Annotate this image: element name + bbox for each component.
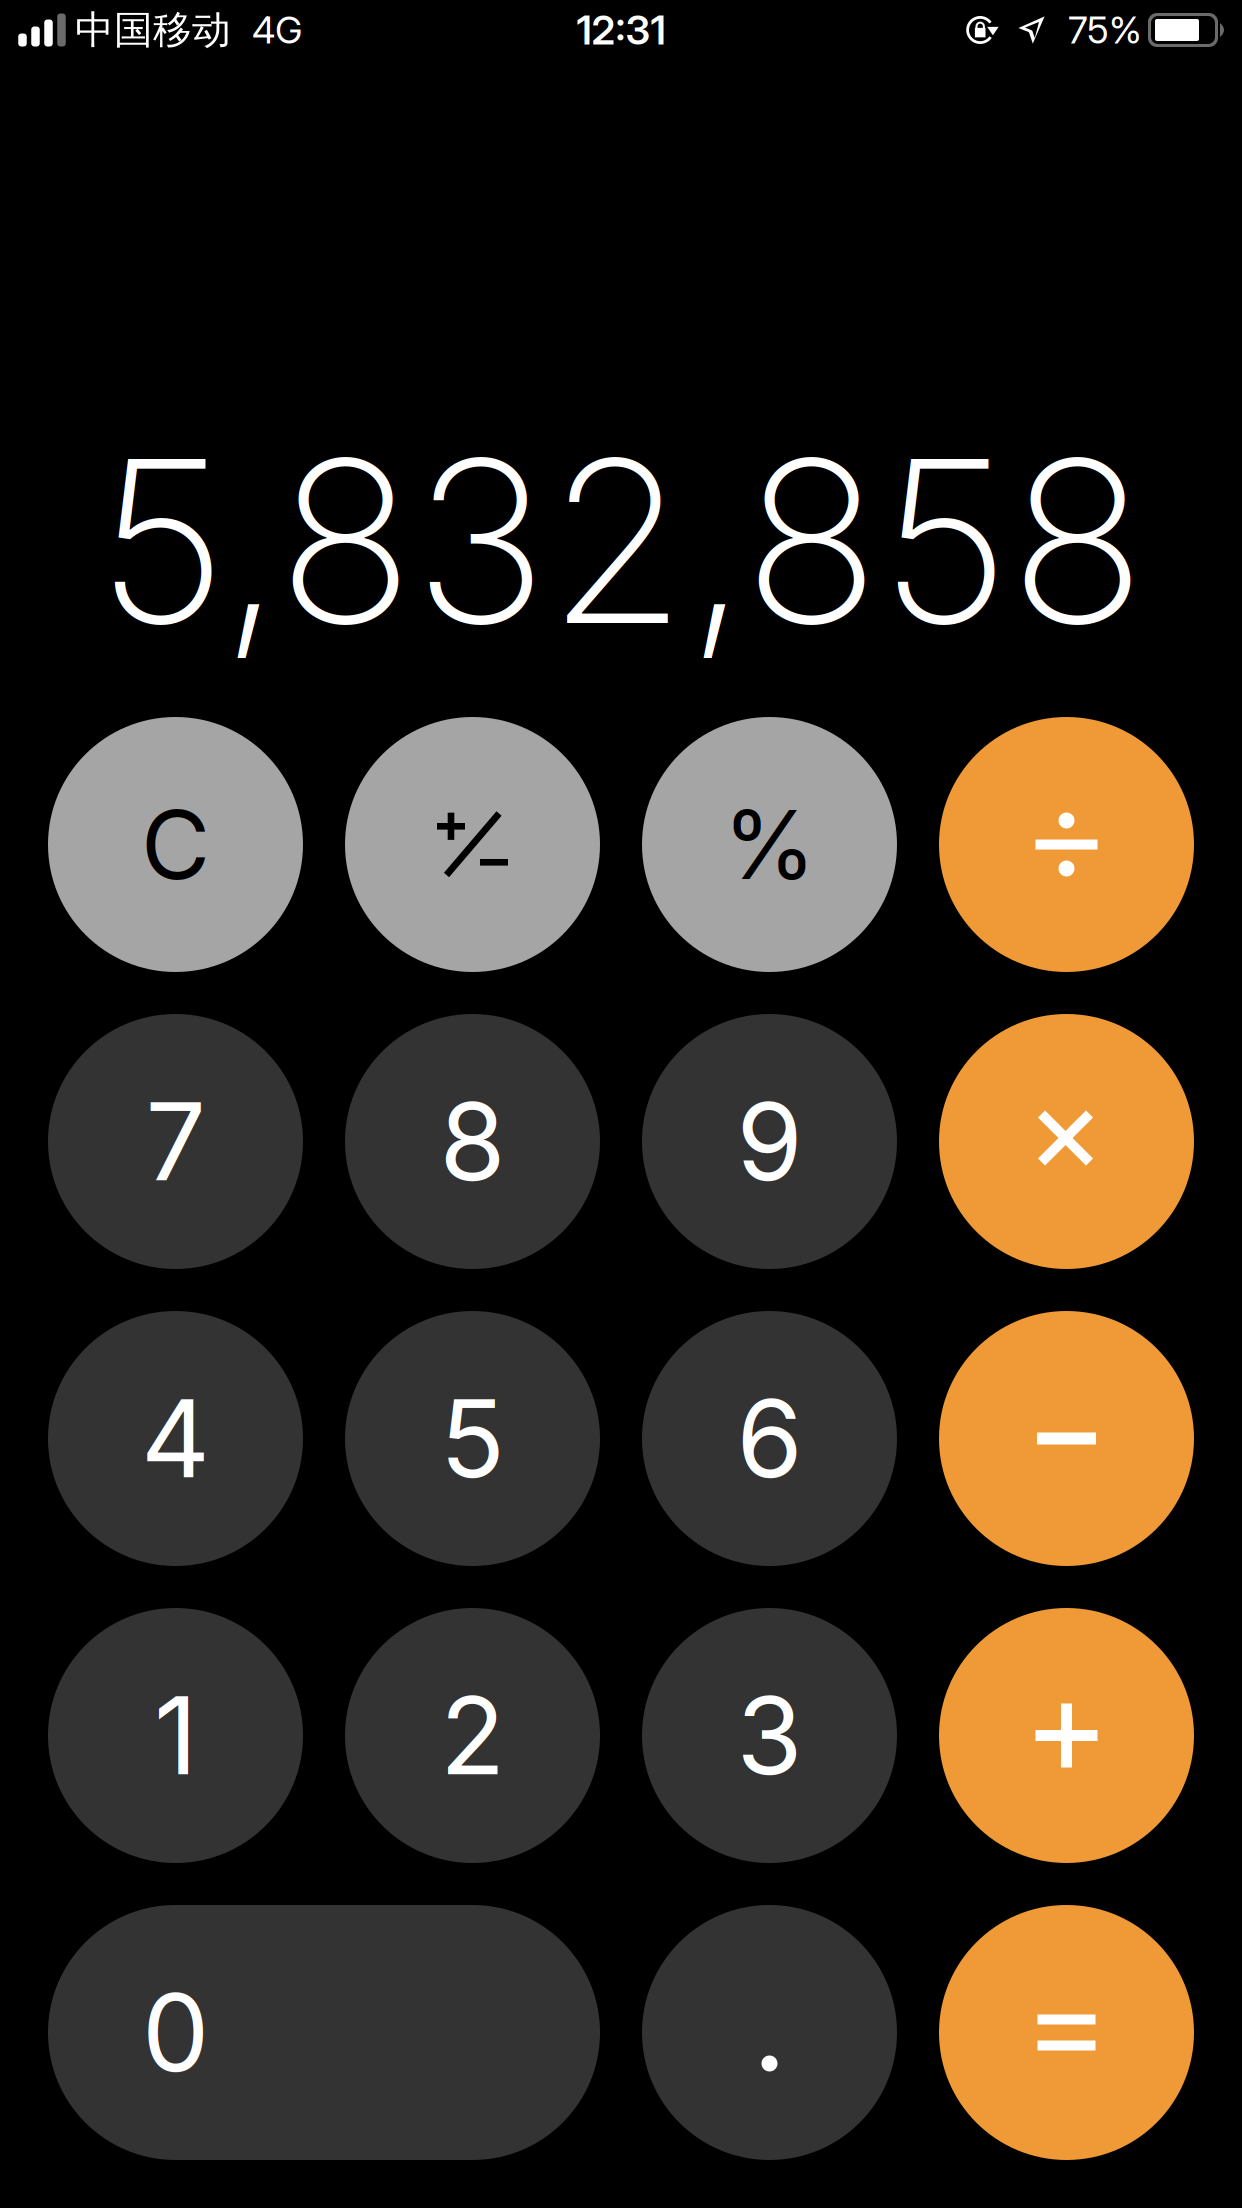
button[interactable]: Multiply [939,1014,1194,1269]
staticText: 4G [252,7,302,53]
button[interactable]: Equals [939,1905,1194,2160]
button[interactable]: Toggle sign [345,717,600,972]
staticText: 8 [439,1077,505,1206]
button[interactable]: 6 [642,1311,897,1566]
button[interactable]: 1 [48,1608,303,1863]
button[interactable]: 9 [642,1014,897,1269]
staticText: 0 [142,1968,209,2097]
staticText: 5 [440,1374,505,1503]
button[interactable]: 8 [345,1014,600,1269]
button[interactable]: 4 [48,1311,303,1566]
staticText: 9 [736,1077,802,1206]
button[interactable]: Subtract [939,1311,1194,1566]
button[interactable]: 5 [345,1311,600,1566]
button[interactable]: Percent [642,717,897,972]
staticText: 2 [440,1671,505,1800]
staticText: 4 [141,1374,210,1503]
staticText: 12:31 [576,6,665,54]
button[interactable]: 7 [48,1014,303,1269]
staticText: 1 [154,1671,197,1800]
staticText: % [723,787,816,902]
staticText: C [141,787,210,902]
staticText: 75% [1068,7,1142,53]
button[interactable]: Decimal point [642,1905,897,2160]
staticText: 中国移动 [75,6,231,54]
staticText: 3 [736,1671,802,1800]
staticText: 5,832,858 [96,405,1145,677]
button[interactable]: Add [939,1608,1194,1863]
button[interactable]: 0 [48,1905,600,2160]
button[interactable]: 3 [642,1608,897,1863]
button[interactable]: Divide [939,717,1194,972]
button[interactable]: Clear [48,717,303,972]
button[interactable]: 2 [345,1608,600,1863]
staticText: 6 [736,1374,802,1503]
staticText: 7 [145,1077,205,1206]
